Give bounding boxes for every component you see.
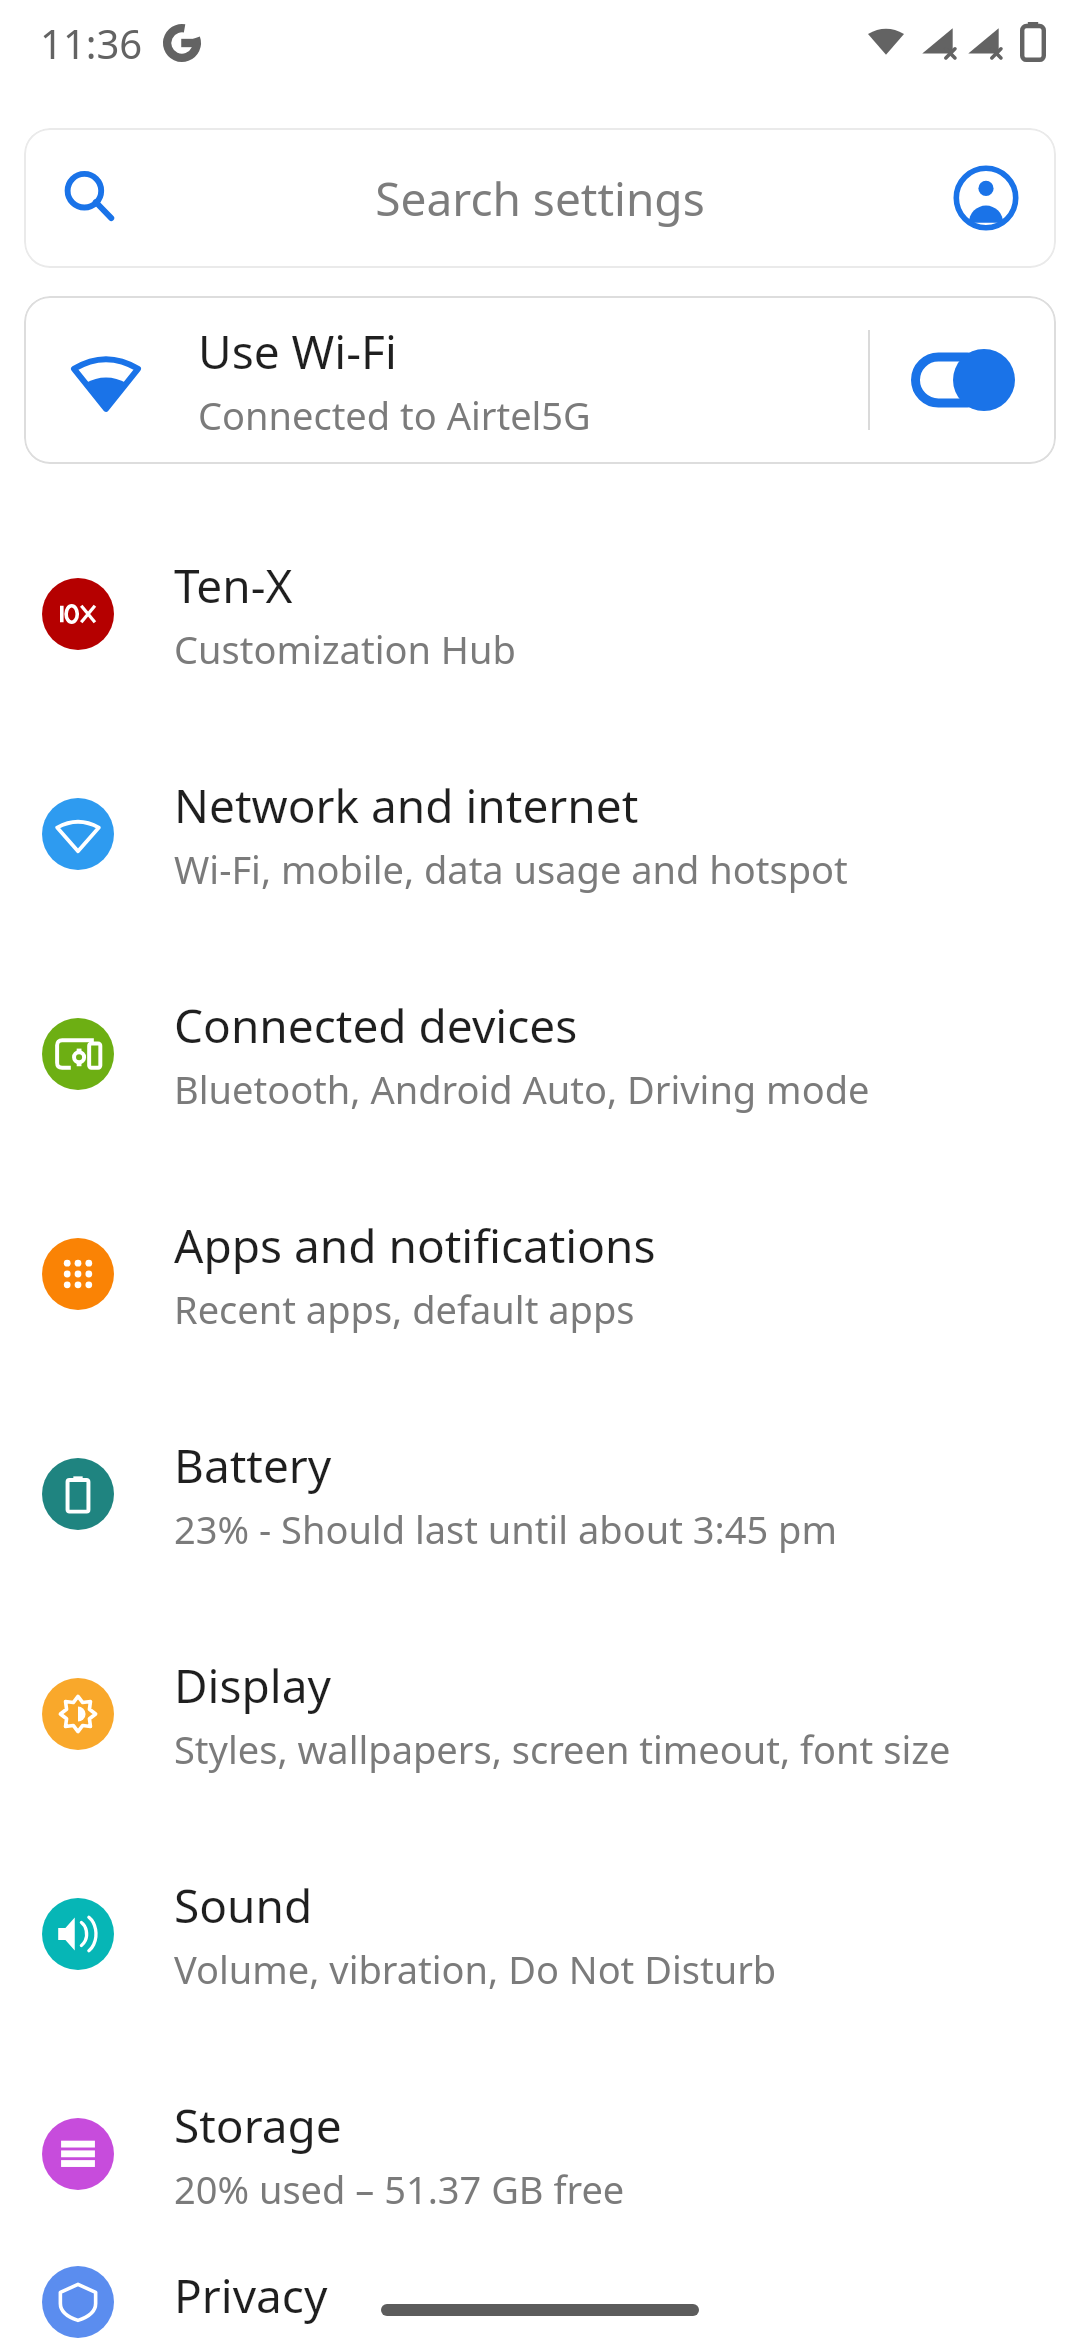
button[interactable]: Ten-X	[0, 504, 1080, 724]
button[interactable]: Battery	[0, 1384, 1080, 1604]
button[interactable]: Display	[0, 1604, 1080, 1824]
staticText: Customization Hub	[174, 623, 516, 675]
staticText: Apps and notifications	[174, 1214, 656, 1277]
button[interactable]: Search settings	[24, 128, 1056, 268]
staticText: Bluetooth, Android Auto, Driving mode	[174, 1063, 870, 1115]
staticText: Use Wi-Fi	[198, 320, 397, 383]
button[interactable]: Privacy	[0, 2264, 1080, 2340]
staticText: Sound	[174, 1874, 313, 1937]
button[interactable]: Network and internet	[0, 724, 1080, 944]
staticText: 11:36	[40, 16, 143, 70]
button[interactable]: Account	[946, 158, 1026, 238]
staticText: Wi-Fi, mobile, data usage and hotspot	[174, 843, 848, 895]
staticText: Styles, wallpapers, screen timeout, font…	[174, 1723, 951, 1775]
button[interactable]: Connected devices	[0, 944, 1080, 1164]
staticText: Privacy	[174, 2264, 328, 2327]
button[interactable]: Use Wi-Fi	[24, 296, 1056, 464]
button[interactable]: Storage	[0, 2044, 1080, 2264]
staticText: Connected devices	[174, 994, 578, 1057]
staticText: 20% used – 51.37 GB free	[174, 2163, 625, 2215]
staticText: Connected to Airtel5G	[198, 389, 591, 441]
staticText: Display	[174, 1654, 331, 1717]
staticText: Network and internet	[174, 774, 639, 837]
button[interactable]: Apps and notifications	[0, 1164, 1080, 1384]
staticText: Recent apps, default apps	[174, 1283, 635, 1335]
button[interactable]: Wi-Fi toggle	[870, 296, 1056, 464]
staticText: 23% - Should last until about 3:45 pm	[174, 1503, 837, 1555]
staticText: Battery	[174, 1434, 332, 1497]
button[interactable]: Sound	[0, 1824, 1080, 2044]
staticText: Volume, vibration, Do Not Disturb	[174, 1943, 777, 1995]
staticText: Ten-X	[174, 554, 293, 617]
staticText: Storage	[174, 2094, 342, 2157]
staticText: Search settings	[375, 167, 705, 230]
